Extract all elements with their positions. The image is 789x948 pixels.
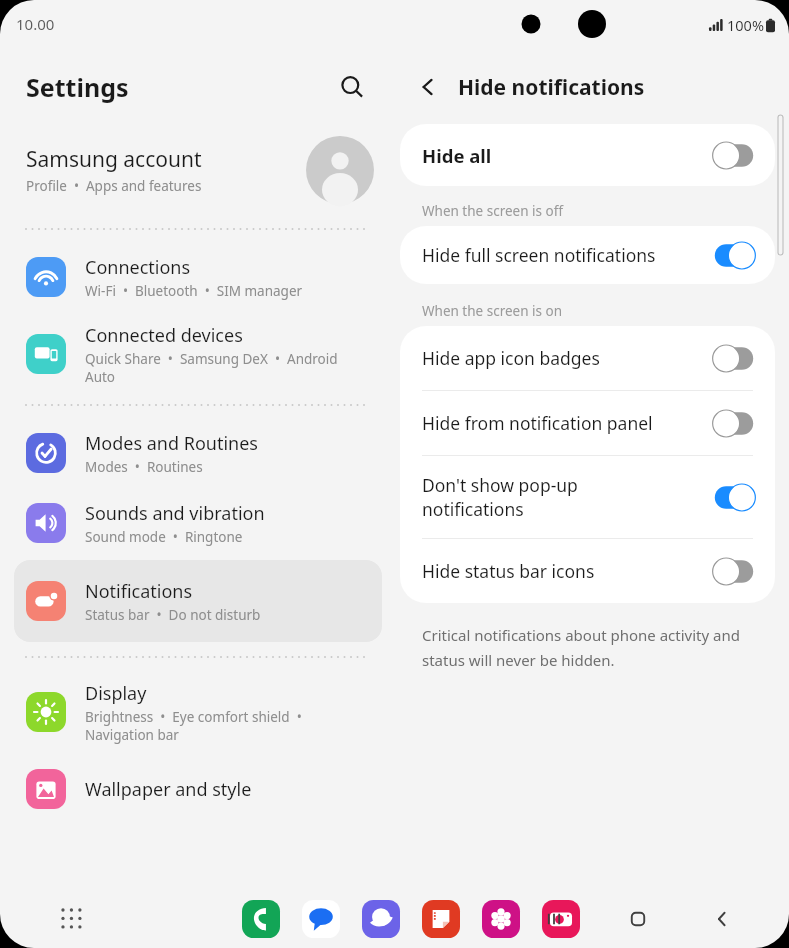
button[interactable]: Back xyxy=(406,65,450,109)
button[interactable]: Hide all xyxy=(400,124,775,186)
button[interactable]: Recents xyxy=(535,900,573,938)
button[interactable]: Notes xyxy=(420,898,462,940)
button[interactable]: Don't show pop-up notifications xyxy=(400,456,775,538)
staticText: 100% xyxy=(727,15,764,35)
button[interactable]: Off xyxy=(707,407,761,439)
button[interactable]: Off xyxy=(707,342,761,374)
staticText: Sounds and vibration xyxy=(85,501,265,526)
button[interactable]: On xyxy=(707,481,761,513)
button[interactable]: Modes and Routines xyxy=(0,424,396,482)
staticText: Hide notifications xyxy=(458,73,645,102)
button[interactable]: Hide from notification panel xyxy=(400,391,775,455)
staticText: Quick Share • Samsung DeX • Android Auto xyxy=(85,350,338,386)
button[interactable]: Sounds and vibration xyxy=(0,494,396,552)
staticText: Hide status bar icons xyxy=(422,559,707,583)
staticText: Profile • Apps and features xyxy=(26,177,202,195)
button[interactable]: Messages xyxy=(300,898,342,940)
staticText: Display xyxy=(85,681,147,706)
staticText: Brightness • Eye comfort shield • Naviga… xyxy=(85,708,302,744)
button[interactable]: Display xyxy=(0,676,396,748)
staticText: Samsung account xyxy=(26,145,202,174)
button[interactable]: Gallery xyxy=(480,898,522,940)
button[interactable]: Hide full screen notifications xyxy=(400,226,775,284)
button[interactable]: Internet xyxy=(360,898,402,940)
button[interactable]: Apps xyxy=(52,899,92,939)
button[interactable]: Camera xyxy=(540,898,582,940)
staticText: Connections xyxy=(85,255,191,280)
staticText: When the screen is on xyxy=(422,302,563,320)
button[interactable]: Wallpaper and style xyxy=(0,760,396,818)
staticText: When the screen is off xyxy=(422,202,563,220)
staticText: Hide all xyxy=(422,143,707,168)
button[interactable]: Home xyxy=(619,900,657,938)
button[interactable]: Off xyxy=(707,139,761,171)
staticText: 10.00 xyxy=(16,14,55,34)
staticText: Modes and Routines xyxy=(85,431,258,456)
staticText: Hide full screen notifications xyxy=(422,243,707,267)
staticText: Connected devices xyxy=(85,323,243,348)
staticText: Modes • Routines xyxy=(85,458,203,476)
staticText: Hide from notification panel xyxy=(422,411,707,435)
button[interactable]: Off xyxy=(707,555,761,587)
staticText: Settings xyxy=(26,70,129,104)
button[interactable]: On xyxy=(707,239,761,271)
button[interactable]: Hide status bar icons xyxy=(400,539,775,603)
button[interactable]: Hide app icon badges xyxy=(400,326,775,390)
button[interactable]: Samsung account xyxy=(0,124,396,216)
button[interactable]: Phone xyxy=(240,898,282,940)
button[interactable]: Back xyxy=(703,900,741,938)
staticText: Don't show pop-up notifications xyxy=(422,473,707,521)
button[interactable]: Connected devices xyxy=(0,318,396,390)
staticText: Wi-Fi • Bluetooth • SIM manager xyxy=(85,282,303,300)
button[interactable]: Connections xyxy=(0,248,396,306)
button[interactable]: Search xyxy=(330,65,374,109)
button[interactable]: Notifications xyxy=(14,560,382,642)
staticText: Wallpaper and style xyxy=(85,777,252,802)
staticText: Hide app icon badges xyxy=(422,346,707,370)
staticText: Critical notifications about phone activ… xyxy=(422,625,740,670)
staticText: Notifications xyxy=(85,579,193,604)
staticText: Status bar • Do not disturb xyxy=(85,606,261,624)
staticText: Sound mode • Ringtone xyxy=(85,528,243,546)
